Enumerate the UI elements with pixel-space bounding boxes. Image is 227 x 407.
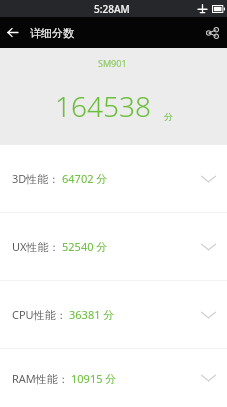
staticText: RAM性能： [12,371,69,386]
staticText: 52540 分 [62,239,108,254]
staticText: UX性能： [12,239,60,254]
staticText: CPU性能： [12,307,67,322]
button[interactable]: CPU性能： [0,281,227,348]
staticText: 164538 [55,87,151,125]
button[interactable]: 3D性能： [0,145,227,212]
staticText: 10915 分 [71,371,117,386]
button[interactable]: Share [197,17,227,48]
button[interactable]: UX性能： [0,213,227,280]
staticText: 64702 分 [62,171,108,186]
staticText: SM901 [98,57,127,69]
staticText: 详细分数 [30,26,74,40]
button[interactable]: Back [0,17,24,48]
staticText: 分 [164,111,173,122]
staticText: 36381 分 [69,307,115,322]
staticText: 5:28AM [94,2,130,16]
staticText: 3D性能： [12,171,60,186]
button[interactable]: RAM性能： [0,349,227,407]
